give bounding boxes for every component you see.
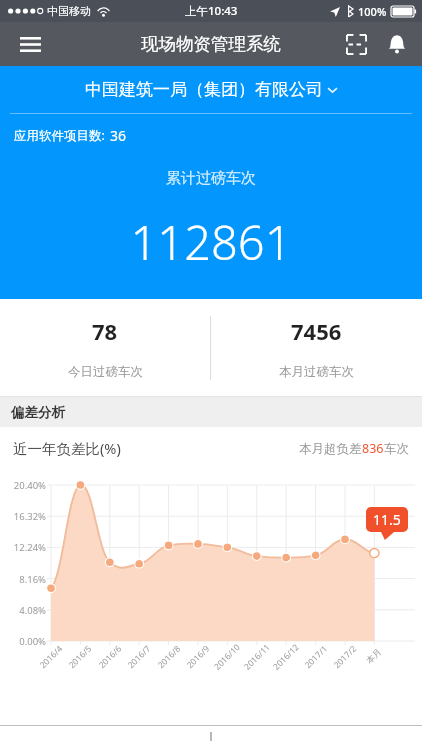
staticText: 836 [362, 440, 384, 457]
staticText: 16.32% [2, 510, 46, 523]
button[interactable]: 78 [0, 299, 210, 396]
staticText: 应用软件项目数: [14, 127, 105, 144]
staticText: 本月超负差 [299, 441, 362, 457]
button[interactable] [0, 469, 422, 699]
staticText: 中国移动 [47, 4, 91, 18]
button[interactable]: 中国建筑一局（集团）有限公司 [0, 66, 422, 113]
staticText: 36 [110, 126, 127, 145]
staticText: 12.24% [2, 541, 46, 554]
staticText: 2016/9 [178, 637, 218, 677]
staticText: 11.5 [373, 510, 401, 529]
staticText: 2016/5 [60, 637, 100, 677]
staticText: 2016/6 [90, 637, 130, 677]
staticText: 4.08% [2, 604, 46, 617]
staticText: 2016/8 [149, 637, 189, 677]
staticText: 车次 [384, 441, 409, 457]
staticText: 100% [358, 4, 387, 19]
button[interactable]: Scan [334, 22, 378, 66]
staticText: 78 [92, 316, 118, 346]
button[interactable]: Notifications [378, 22, 416, 66]
staticText: 20.40% [2, 479, 46, 492]
staticText: 近一年负差比(%) [13, 438, 121, 458]
staticText: 中国建筑一局（集团）有限公司 [85, 79, 323, 100]
staticText: 112861 [0, 210, 422, 274]
staticText: 2016/12 [266, 637, 306, 677]
staticText: 8.16% [2, 573, 46, 586]
staticText: 本月 [355, 637, 393, 676]
staticText: 2016/4 [31, 637, 71, 677]
button[interactable]: 7456 [211, 299, 422, 396]
staticText: 7456 [291, 316, 342, 346]
staticText: 2017/1 [296, 637, 336, 677]
staticText: 2016/11 [237, 637, 277, 677]
staticText: 上午10:43 [185, 3, 238, 19]
staticText: 2016/10 [207, 637, 247, 677]
staticText: 2017/2 [325, 637, 365, 677]
staticText: 0.00% [2, 635, 46, 648]
staticText: 2016/7 [119, 637, 159, 677]
staticText: 偏差分析 [11, 404, 65, 421]
button[interactable]: Menu [8, 22, 52, 66]
staticText: 今日过磅车次 [68, 364, 143, 380]
staticText: 本月过磅车次 [279, 364, 354, 380]
staticText: 累计过磅车次 [0, 169, 422, 188]
staticText: 现场物资管理系统 [141, 33, 281, 55]
